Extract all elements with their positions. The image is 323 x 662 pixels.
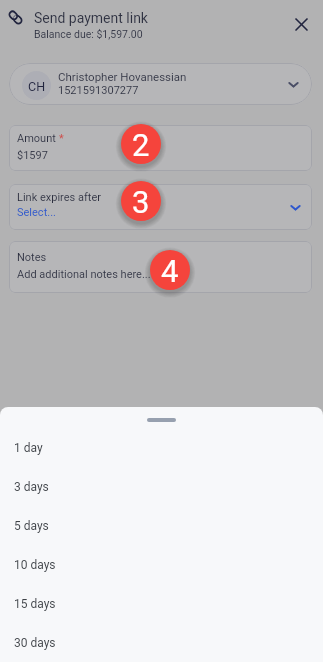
button[interactable]: 15 days bbox=[0, 584, 323, 623]
button[interactable]: 1 day bbox=[0, 428, 323, 467]
staticText: * bbox=[59, 132, 64, 145]
button[interactable]: Link expires after bbox=[9, 184, 312, 230]
staticText: 10 days bbox=[14, 558, 56, 572]
staticText: 2 bbox=[132, 127, 150, 163]
button[interactable]: Amount bbox=[9, 125, 312, 171]
staticText: 4 bbox=[161, 253, 179, 289]
staticText: Link expires after bbox=[17, 191, 101, 204]
button[interactable]: 30 days bbox=[0, 623, 323, 662]
staticText: 5 days bbox=[14, 519, 49, 533]
staticText: Amount bbox=[17, 132, 56, 145]
staticText: Notes bbox=[17, 251, 47, 264]
staticText: 3 bbox=[132, 184, 150, 220]
staticText: Christopher Hovanessian bbox=[58, 70, 187, 83]
staticText: Balance due: $1,597.00 bbox=[34, 28, 143, 40]
staticText: 30 days bbox=[14, 636, 56, 650]
button[interactable]: CH bbox=[9, 63, 312, 105]
staticText: Send payment link bbox=[34, 10, 148, 26]
staticText: 1521591307277 bbox=[58, 84, 139, 97]
button[interactable]: 10 days bbox=[0, 545, 323, 584]
staticText: Add additional notes here... bbox=[17, 268, 151, 281]
staticText: Select... bbox=[17, 206, 56, 219]
button[interactable]: Close bbox=[287, 10, 315, 38]
staticText: $1597 bbox=[17, 149, 48, 162]
staticText: 1 day bbox=[14, 441, 43, 455]
staticText: 3 days bbox=[14, 480, 49, 494]
staticText: 15 days bbox=[14, 597, 56, 611]
staticText: CH bbox=[28, 79, 46, 94]
button[interactable]: 3 days bbox=[0, 467, 323, 506]
button[interactable]: Notes bbox=[9, 241, 312, 293]
button[interactable]: 5 days bbox=[0, 506, 323, 545]
